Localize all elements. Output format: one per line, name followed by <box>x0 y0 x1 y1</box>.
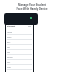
staticText: Class <box>7 36 12 38</box>
staticText: Mail <box>7 66 11 68</box>
staticText: City <box>7 61 11 63</box>
staticText: Phone <box>7 56 13 58</box>
staticText: Manage Your Student <box>0 3 64 7</box>
button[interactable]: Class <box>7 36 32 41</box>
button[interactable]: City <box>7 61 32 66</box>
staticText: Sex <box>7 51 10 53</box>
button[interactable]: Name <box>7 31 32 36</box>
button[interactable]: Roll <box>7 41 32 46</box>
button[interactable]: Sec <box>7 46 32 51</box>
staticText: Edit <box>28 25 32 27</box>
button[interactable] <box>4 13 38 25</box>
staticText: Name <box>7 31 13 33</box>
button[interactable]: Sex <box>7 51 32 56</box>
button[interactable]: Phone <box>7 56 32 61</box>
button[interactable]: Mail <box>7 66 32 71</box>
staticText: Roll <box>7 41 11 43</box>
staticText: Student <box>7 25 16 28</box>
staticText: Face With Handy Device <box>0 7 64 11</box>
staticText: Sec <box>7 46 10 48</box>
